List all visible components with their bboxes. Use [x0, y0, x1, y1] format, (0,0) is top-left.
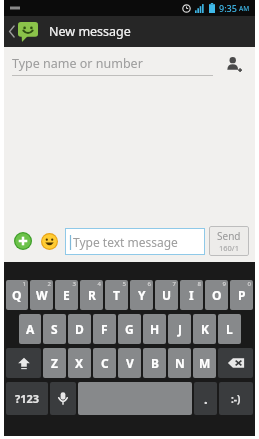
staticText: W [36, 287, 48, 303]
staticText: Z [51, 355, 58, 371]
button[interactable]: Q [6, 280, 28, 310]
staticText: I [189, 287, 194, 303]
button[interactable]: P [230, 280, 253, 310]
staticText: Q [12, 287, 22, 303]
button[interactable]: Voice input [50, 382, 76, 415]
button[interactable]: O [205, 280, 228, 310]
staticText: Type name or number [12, 55, 143, 72]
staticText: 9 [222, 280, 226, 288]
button[interactable]: E [55, 280, 78, 310]
button[interactable]: :-) [219, 382, 253, 415]
staticText: K [201, 321, 209, 337]
staticText: H [150, 321, 160, 337]
button[interactable]: Back [4, 16, 42, 47]
button[interactable]: N [168, 348, 191, 378]
staticText: F [101, 321, 108, 337]
button[interactable]: C [93, 348, 116, 378]
staticText: 7 [172, 280, 176, 288]
button[interactable]: A [19, 314, 41, 344]
staticText: S [51, 321, 58, 337]
staticText: 9:35 [219, 2, 237, 14]
button[interactable]: J [168, 314, 191, 344]
staticText: M [199, 355, 211, 371]
staticText: 4 [97, 280, 101, 288]
staticText: 6 [147, 280, 151, 288]
button[interactable]: H [143, 314, 166, 344]
staticText: 0 [247, 280, 251, 288]
button[interactable]: Send [209, 226, 249, 256]
staticText: A [26, 321, 35, 337]
button[interactable]: Shift [6, 348, 41, 378]
staticText: J [178, 321, 182, 337]
button[interactable]: X [68, 348, 91, 378]
button[interactable]: L [218, 314, 241, 344]
staticText: V [126, 355, 134, 371]
staticText: Y [138, 287, 146, 303]
staticText: P [238, 287, 246, 303]
button[interactable]: G [118, 314, 141, 344]
staticText: . [204, 390, 208, 408]
button[interactable]: ?123 [6, 382, 48, 415]
staticText: X [75, 355, 84, 371]
button[interactable]: W [30, 280, 53, 310]
staticText: L [226, 321, 233, 337]
button[interactable]: I [180, 280, 203, 310]
staticText: AM [239, 4, 250, 13]
staticText: 5 [122, 280, 126, 288]
button[interactable]: K [193, 314, 216, 344]
button[interactable]: M [193, 348, 216, 378]
button[interactable]: Type name or number [12, 47, 213, 80]
staticText: B [151, 355, 159, 371]
staticText: 8 [197, 280, 201, 288]
button[interactable]: V [118, 348, 141, 378]
staticText: Type text message [73, 234, 178, 250]
staticText: N [175, 355, 185, 371]
button[interactable]: T [105, 280, 128, 310]
button[interactable]: S [43, 314, 66, 344]
button[interactable]: . [194, 382, 217, 415]
button[interactable]: Backspace [218, 348, 253, 378]
button[interactable]: Add attachment [10, 228, 36, 254]
staticText: D [75, 321, 84, 337]
staticText: 2 [47, 280, 51, 288]
button[interactable]: D [68, 314, 91, 344]
staticText: ?123 [15, 391, 40, 406]
button[interactable]: Add contact [221, 51, 247, 77]
staticText: New message [49, 23, 131, 40]
staticText: C [101, 355, 109, 371]
button[interactable]: B [143, 348, 166, 378]
button[interactable]: R [80, 280, 103, 310]
staticText: 160/1 [219, 243, 239, 253]
staticText: R [88, 287, 96, 303]
staticText: O [212, 287, 222, 303]
staticText: T [113, 287, 120, 303]
staticText: :-) [231, 392, 241, 406]
button[interactable]: U [155, 280, 178, 310]
staticText: 3 [72, 280, 76, 288]
staticText: E [63, 287, 70, 303]
staticText: U [162, 287, 172, 303]
staticText: 1 [22, 280, 26, 288]
button[interactable]: Type text message [65, 228, 205, 255]
button[interactable]: Z [43, 348, 66, 378]
button[interactable]: F [93, 314, 116, 344]
staticText: G [125, 321, 134, 337]
button[interactable]: Y [130, 280, 153, 310]
button[interactable]: Insert emoji [36, 228, 62, 254]
staticText: Send [217, 229, 241, 243]
